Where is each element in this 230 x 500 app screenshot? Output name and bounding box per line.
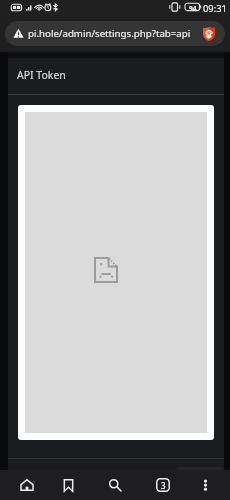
staticText: 3 [161,480,166,491]
staticText: 94 [189,4,197,13]
button[interactable]: Tabs, 3 open [140,470,185,500]
button[interactable]: More options [183,470,228,500]
staticText: pi.hole/admin/settings.php?tab=api [28,27,191,40]
button[interactable] [176,467,224,473]
button[interactable]: Brave shields [200,25,217,42]
button[interactable]: Search [92,470,138,500]
staticText: API Token [17,68,66,82]
staticText: 09:31 [203,2,227,15]
button[interactable]: Bookmarks [46,470,91,500]
button[interactable]: pi.hole/admin/settings.php?tab=api [5,21,225,46]
button[interactable]: Home [4,470,49,500]
